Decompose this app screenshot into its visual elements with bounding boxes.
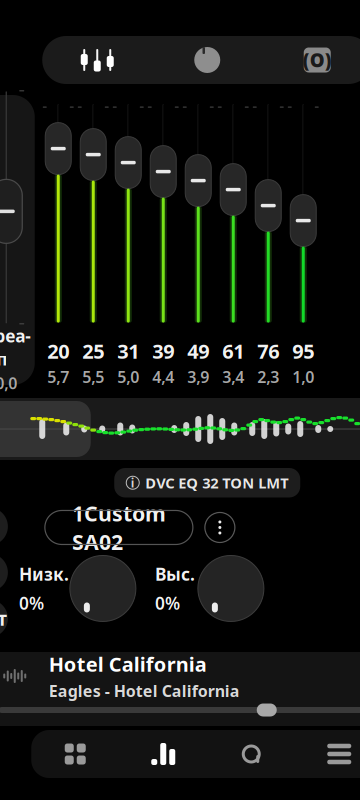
staticText: i	[131, 475, 135, 491]
button[interactable]: Tone control	[152, 38, 262, 82]
button[interactable]: More options	[203, 510, 237, 544]
staticText: 0%	[155, 591, 180, 614]
button[interactable]: Search	[207, 731, 295, 777]
staticText: Преамп	[0, 324, 31, 370]
staticText: Eagles - Hotel California	[49, 680, 240, 701]
staticText: 31	[117, 338, 139, 364]
staticText: 5,0	[117, 366, 139, 387]
staticText: 61	[222, 338, 244, 364]
button[interactable]: 1Custom SA02	[45, 510, 193, 544]
button[interactable]: Equalizer	[42, 38, 152, 82]
button[interactable]: Library	[31, 731, 119, 777]
button[interactable]: Equalizer tab	[119, 731, 207, 777]
button[interactable]: Treble knob	[198, 555, 264, 621]
staticText: 95	[292, 338, 314, 364]
staticText: Низк.	[19, 562, 69, 585]
button[interactable]: Playlists	[295, 731, 360, 777]
staticText: 1,0	[292, 366, 314, 387]
staticText: 1Custom SA02	[72, 499, 166, 556]
staticText: 49	[187, 338, 209, 364]
staticText: 0,0	[0, 372, 17, 394]
staticText: 25	[82, 338, 104, 364]
button[interactable]: Экв.	[0, 507, 8, 545]
button[interactable]: Лимит	[0, 599, 8, 637]
staticText: 39	[152, 338, 174, 364]
staticText: DVC EQ 32 TON LMT	[145, 473, 288, 492]
button[interactable]: Surround	[262, 38, 360, 82]
button[interactable]: i	[114, 468, 300, 497]
staticText: 5,5	[82, 366, 104, 387]
staticText: 76	[257, 338, 279, 364]
staticText: (O)	[303, 48, 332, 72]
staticText: 4,4	[152, 366, 174, 387]
staticText: 20	[47, 338, 69, 364]
button[interactable]: Тон	[0, 553, 8, 591]
staticText: Выс.	[155, 562, 195, 585]
button[interactable]: Bass knob	[70, 555, 136, 621]
staticText: 2,3	[257, 366, 279, 387]
staticText: Лимит	[0, 606, 6, 631]
staticText: 3,9	[187, 366, 209, 387]
staticText: 0%	[19, 591, 44, 614]
staticText: Hotel California	[49, 651, 207, 677]
staticText: 3,4	[222, 366, 244, 387]
staticText: 5,7	[47, 366, 69, 387]
